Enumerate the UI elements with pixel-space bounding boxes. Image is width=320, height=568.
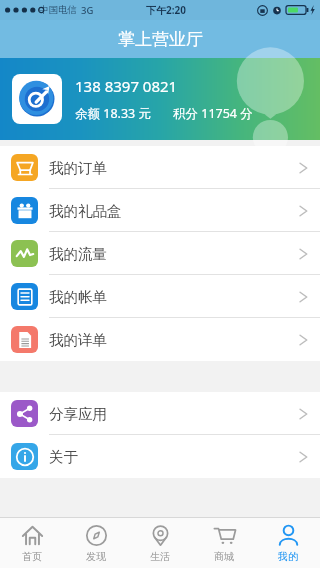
staticText: 我的礼品盒 [49,202,122,220]
staticText: 发现 [86,550,106,563]
button[interactable]: 商城 [192,518,256,568]
button[interactable]: 首页 [0,518,64,568]
button[interactable]: 我的礼品盒 [0,189,320,232]
button[interactable]: 我的 [256,518,320,568]
button[interactable]: 我的详单 [0,318,320,361]
button[interactable]: 发现 [64,518,128,568]
staticText: 我的流量 [49,245,107,263]
button[interactable]: 我的订单 [0,146,320,189]
staticText: 首页 [22,550,42,563]
staticText: 分享应用 [49,405,107,423]
staticText: 我的帐单 [49,288,107,306]
staticText: 生活 [150,550,170,563]
staticText: 关于 [49,448,78,466]
staticText: 商城 [214,550,234,563]
staticText: 掌上营业厅 [118,29,203,50]
staticText: 我的 [278,550,298,563]
staticText: 余额 18.33 元 [75,105,151,122]
button[interactable]: 生活 [128,518,192,568]
staticText: 积分 11754 分 [173,105,253,122]
staticText: 下午2:20 [146,3,186,17]
staticText: 中国电信 [39,4,77,16]
button[interactable]: 我的流量 [0,232,320,275]
staticText: 138 8397 0821 [75,76,178,96]
staticText: 我的订单 [49,159,107,177]
staticText: 3G [81,4,94,17]
button[interactable]: 分享应用 [0,392,320,435]
button[interactable]: 我的帐单 [0,275,320,318]
staticText: 我的详单 [49,331,107,349]
button[interactable]: 关于 [0,435,320,478]
